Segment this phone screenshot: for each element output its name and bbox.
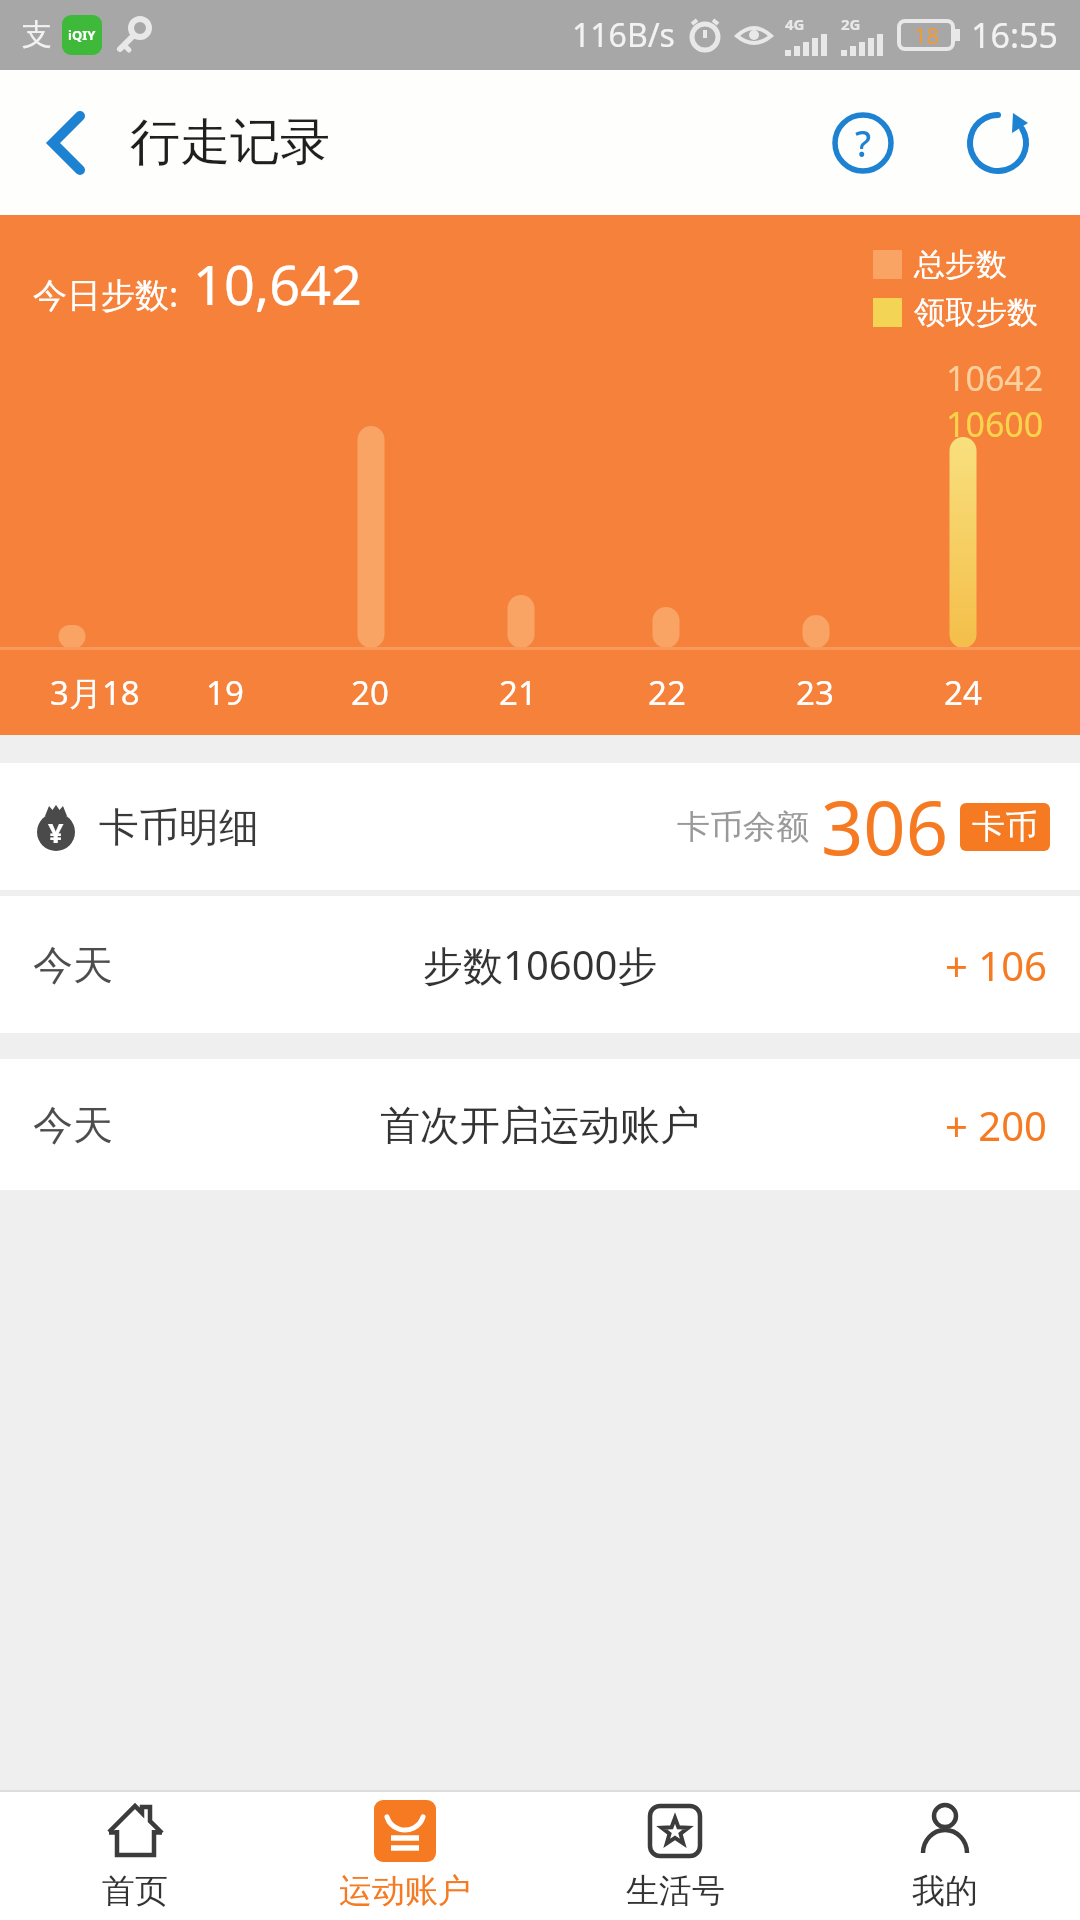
staticText: 116B/s (572, 13, 675, 57)
staticText: 10642 (946, 355, 1044, 401)
staticText: 24 (944, 670, 982, 715)
button[interactable]: 我的 (810, 1792, 1080, 1920)
staticText: 首页 (102, 1870, 168, 1912)
button[interactable]: ¥ (33, 763, 1050, 890)
staticText: 总步数 (914, 245, 1007, 284)
staticText: 运动账户 (339, 1870, 471, 1912)
staticText: 10,642 (193, 247, 362, 321)
staticText: 行走记录 (130, 111, 330, 174)
staticText: iQIY (68, 26, 96, 44)
staticText: 卡币 (972, 806, 1038, 848)
staticText: ? (855, 119, 872, 168)
button[interactable]: 运动账户 (270, 1792, 540, 1920)
button[interactable]: 首页 (0, 1792, 270, 1920)
staticText: 生活号 (626, 1870, 725, 1912)
button[interactable]: 今天 (33, 896, 1047, 1033)
staticText: 步数10600步 (423, 937, 658, 992)
staticText: 卡币余额 (677, 806, 809, 848)
button[interactable] (28, 70, 104, 215)
staticText: 18 (914, 20, 940, 50)
staticText: 10600 (946, 401, 1044, 447)
staticText: 4G (785, 14, 805, 34)
staticText: 2G (841, 14, 861, 34)
staticText: 我的 (912, 1870, 978, 1912)
staticText: 今日步数: (33, 271, 179, 317)
staticText: 卡币明细 (99, 802, 259, 852)
staticText: 19 (206, 670, 244, 715)
button[interactable] (958, 70, 1038, 215)
button[interactable]: ? (823, 70, 903, 215)
staticText: + 106 (945, 938, 1047, 992)
staticText: 21 (499, 670, 537, 715)
staticText: 306 (821, 776, 948, 877)
staticText: 今天 (33, 1100, 113, 1150)
staticText: 支 (22, 16, 52, 54)
staticText: 领取步数 (914, 293, 1038, 332)
staticText: 今天 (33, 940, 113, 990)
staticText: 首次开启运动账户 (380, 1100, 700, 1150)
staticText: 23 (796, 670, 834, 715)
staticText: 16:55 (971, 12, 1058, 58)
button[interactable]: 今天 (33, 1059, 1047, 1190)
staticText: + 200 (945, 1098, 1047, 1152)
staticText: ¥ (48, 814, 64, 851)
button[interactable]: 生活号 (540, 1792, 810, 1920)
staticText: 20 (351, 670, 389, 715)
staticText: 22 (648, 670, 686, 715)
staticText: 3月18 (50, 670, 140, 715)
